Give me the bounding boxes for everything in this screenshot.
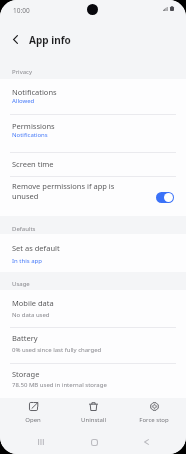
button[interactable]: Back bbox=[135, 431, 157, 453]
staticText: Battery bbox=[12, 333, 38, 343]
staticText: Uninstall bbox=[81, 416, 106, 424]
button[interactable]: Remove permissions if app is unused bbox=[0, 177, 186, 216]
button[interactable]: Force stop bbox=[127, 398, 181, 426]
staticText: Mobile data bbox=[12, 298, 54, 308]
staticText: Usage bbox=[12, 280, 30, 288]
button[interactable]: Storage bbox=[0, 364, 186, 398]
staticText: Allowed bbox=[12, 97, 35, 105]
staticText: Screen time bbox=[12, 159, 54, 169]
button[interactable]: Screen time bbox=[0, 153, 186, 176]
staticText: Set as default bbox=[12, 243, 60, 253]
button[interactable]: Notifications bbox=[0, 79, 186, 114]
staticText: App info bbox=[29, 33, 71, 47]
button[interactable]: Recents bbox=[30, 431, 52, 453]
button[interactable]: Mobile data bbox=[0, 290, 186, 328]
staticText: Force stop bbox=[139, 416, 169, 424]
button[interactable]: Home bbox=[83, 431, 105, 453]
staticText: Open bbox=[25, 416, 41, 424]
button[interactable]: Navigate up bbox=[5, 29, 25, 49]
staticText: In this app bbox=[12, 257, 42, 265]
staticText: 0% used since last fully charged bbox=[12, 346, 102, 354]
button[interactable]: Set as default bbox=[0, 234, 186, 272]
staticText: Privacy bbox=[12, 68, 33, 76]
staticText: Notifications bbox=[12, 87, 57, 97]
staticText: Storage bbox=[12, 369, 40, 379]
staticText: Remove permissions if app is unused bbox=[12, 181, 122, 201]
staticText: 10:00 bbox=[13, 6, 30, 15]
staticText: Defaults bbox=[12, 225, 36, 233]
button[interactable]: Permissions bbox=[0, 115, 186, 152]
button[interactable]: Open bbox=[6, 398, 60, 426]
staticText: No data used bbox=[12, 311, 50, 319]
staticText: Notifications bbox=[12, 131, 48, 139]
staticText: Permissions bbox=[12, 121, 55, 131]
button[interactable]: Remove permissions toggle bbox=[156, 192, 174, 203]
button[interactable]: Uninstall bbox=[66, 398, 120, 426]
button[interactable]: Battery bbox=[0, 328, 186, 363]
staticText: 78.50 MB used in internal storage bbox=[12, 381, 107, 389]
